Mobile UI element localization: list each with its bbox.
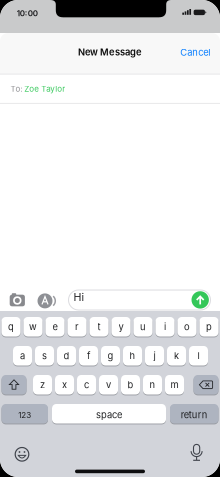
button[interactable]: return: [170, 404, 218, 423]
button[interactable]: o: [177, 317, 196, 336]
button[interactable]: f: [79, 346, 98, 365]
staticText: x: [62, 379, 67, 390]
staticText: o: [184, 321, 190, 332]
staticText: a: [20, 350, 25, 361]
staticText: New Message: [78, 46, 142, 57]
button[interactable]: q: [1, 317, 20, 336]
staticText: d: [63, 350, 69, 361]
staticText: q: [8, 321, 14, 332]
staticText: z: [40, 379, 45, 390]
staticText: n: [149, 379, 155, 390]
button[interactable]: u: [133, 317, 152, 336]
button[interactable]: n: [143, 375, 162, 394]
staticText: j: [153, 350, 155, 361]
button[interactable]: a: [13, 346, 32, 365]
staticText: 123: [18, 410, 31, 420]
staticText: i: [164, 321, 166, 332]
staticText: Cancel: [180, 47, 210, 58]
button[interactable]: w: [23, 317, 42, 336]
button[interactable]: [189, 442, 205, 462]
staticText: To:: [10, 84, 22, 93]
button[interactable]: m: [165, 375, 184, 394]
staticText: u: [140, 321, 146, 332]
button[interactable]: [14, 446, 30, 462]
button[interactable]: l: [189, 346, 208, 365]
button[interactable]: h: [123, 346, 142, 365]
staticText: y: [118, 321, 123, 332]
staticText: w: [29, 321, 37, 332]
button[interactable]: v: [99, 375, 118, 394]
button[interactable]: z: [33, 375, 52, 394]
button[interactable]: [191, 291, 209, 309]
button[interactable]: s: [35, 346, 54, 365]
staticText: e: [52, 321, 57, 332]
staticText: v: [106, 379, 111, 390]
button[interactable]: [1, 375, 26, 394]
staticText: l: [197, 350, 199, 361]
staticText: s: [42, 350, 47, 361]
button[interactable]: p: [199, 317, 218, 336]
staticText: c: [84, 379, 89, 390]
staticText: t: [97, 321, 100, 332]
button[interactable]: [193, 375, 218, 394]
button[interactable]: [6, 291, 28, 309]
button[interactable]: d: [57, 346, 76, 365]
staticText: m: [170, 379, 178, 390]
button[interactable]: e: [45, 317, 64, 336]
staticText: g: [107, 350, 113, 361]
button[interactable]: i: [155, 317, 174, 336]
button[interactable]: To:: [0, 74, 220, 103]
button[interactable]: k: [167, 346, 186, 365]
staticText: space: [96, 409, 122, 420]
staticText: h: [129, 350, 135, 361]
staticText: return: [181, 409, 208, 420]
staticText: 10:00: [17, 9, 38, 18]
button[interactable]: [37, 293, 53, 309]
button[interactable]: t: [89, 317, 108, 336]
staticText: Zoe Taylor: [24, 84, 65, 93]
staticText: p: [206, 321, 212, 332]
staticText: f: [87, 350, 90, 361]
button[interactable]: r: [67, 317, 86, 336]
button[interactable]: x: [55, 375, 74, 394]
button[interactable]: space: [52, 404, 166, 423]
staticText: k: [174, 350, 179, 361]
button[interactable]: c: [77, 375, 96, 394]
button[interactable]: y: [111, 317, 130, 336]
button[interactable]: b: [121, 375, 140, 394]
button[interactable]: Cancel: [180, 47, 210, 58]
button[interactable]: j: [145, 346, 164, 365]
button[interactable]: 123: [1, 404, 48, 423]
staticText: r: [75, 321, 79, 332]
staticText: Hi: [74, 291, 85, 303]
staticText: b: [127, 379, 133, 390]
button[interactable]: g: [101, 346, 120, 365]
